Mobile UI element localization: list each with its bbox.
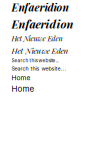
staticText: Enfaeridion <box>11 0 68 14</box>
staticText: Het Nieuwe Eden <box>11 45 68 56</box>
staticText: Search this website... <box>11 65 66 72</box>
staticText: Het Nieuwe Eden <box>11 33 62 43</box>
staticText: Home <box>11 84 34 94</box>
staticText: Home <box>11 74 30 82</box>
staticText: Search this website... <box>11 58 58 63</box>
staticText: Enfaeridion <box>11 16 73 31</box>
